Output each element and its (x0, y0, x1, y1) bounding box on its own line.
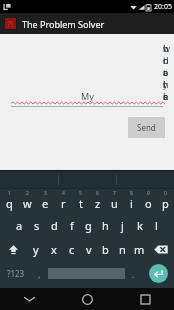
staticText: Send (137, 122, 156, 133)
staticText: p (162, 196, 169, 211)
button[interactable]: 6 (89, 189, 106, 213)
staticText: w (23, 196, 32, 211)
button[interactable]: l (148, 213, 165, 237)
staticText: 7 (113, 190, 116, 197)
staticText: d (51, 218, 58, 233)
button[interactable]: a (10, 213, 28, 237)
button[interactable]: , (31, 261, 48, 286)
button[interactable]: Home (58, 288, 116, 310)
button[interactable]: x (45, 237, 63, 261)
staticText: k (137, 218, 143, 233)
staticText: u (111, 196, 118, 211)
button[interactable]: Shift (0, 237, 27, 261)
staticText: . (132, 268, 135, 280)
staticText: s (34, 218, 40, 233)
staticText: ?123 (7, 268, 25, 279)
button[interactable]: Recent apps (116, 288, 174, 310)
button[interactable]: h (97, 213, 114, 237)
button[interactable]: g (80, 213, 97, 237)
staticText: j (121, 218, 124, 233)
staticText: 4 (62, 190, 65, 197)
staticText: 20:05 (154, 2, 172, 12)
button[interactable]: 8 (123, 189, 140, 213)
button[interactable]: Hide keyboard (0, 288, 58, 310)
button[interactable]: Backspace (148, 237, 174, 261)
button[interactable]: 2 (18, 189, 36, 213)
staticText: 9 (147, 190, 150, 197)
staticText: x (51, 242, 57, 257)
button[interactable]: k (131, 213, 148, 237)
staticText: o (145, 196, 152, 211)
staticText: z (95, 196, 101, 211)
staticText: i (130, 196, 133, 211)
staticText: v (86, 242, 92, 257)
staticText: q (6, 196, 13, 211)
button[interactable]: 9 (140, 189, 157, 213)
staticText: r (61, 196, 66, 211)
button[interactable]: v (80, 237, 97, 261)
button[interactable]: 4 (54, 189, 72, 213)
staticText: e (42, 196, 49, 211)
button[interactable]: y (27, 237, 45, 261)
button[interactable]: b (97, 237, 114, 261)
button[interactable]: m (131, 237, 148, 261)
button[interactable]: ?123 (0, 261, 31, 286)
staticText: y (33, 242, 39, 257)
button[interactable]: 5 (72, 189, 89, 213)
button[interactable]: c (63, 237, 80, 261)
button[interactable]: j (114, 213, 131, 237)
button[interactable]: Send (128, 117, 165, 138)
staticText: g (85, 218, 92, 233)
staticText: 0 (164, 190, 167, 197)
button[interactable]: 0 (157, 189, 174, 213)
button[interactable]: My (11, 42, 163, 107)
staticText: f (70, 218, 74, 233)
staticText: The Problem Solver (22, 18, 105, 30)
staticText: 5 (79, 190, 82, 197)
staticText: 2 (26, 190, 29, 197)
staticText: t (79, 196, 83, 211)
button[interactable]: 7 (106, 189, 123, 213)
staticText: a (16, 218, 23, 233)
button[interactable]: 3 (36, 189, 54, 213)
staticText: l (155, 218, 158, 233)
staticText: 8 (130, 190, 133, 197)
button[interactable]: f (63, 213, 80, 237)
staticText: My (81, 90, 94, 102)
staticText: b (102, 242, 109, 257)
staticText: n (119, 242, 126, 257)
staticText: 1 (8, 190, 11, 197)
staticText: c (69, 242, 75, 257)
staticText: , (38, 268, 41, 280)
staticText: h (102, 218, 109, 233)
staticText: ?! (7, 18, 14, 29)
staticText: 6 (96, 190, 99, 197)
staticText: m (134, 242, 145, 257)
button[interactable] (48, 261, 125, 286)
button[interactable]: n (114, 237, 131, 261)
button[interactable]: 1 (0, 189, 18, 213)
button[interactable]: d (46, 213, 63, 237)
button[interactable]: s (28, 213, 46, 237)
staticText: 3 (44, 190, 47, 197)
button[interactable]: Enter (149, 264, 168, 283)
button[interactable]: . (125, 261, 142, 286)
